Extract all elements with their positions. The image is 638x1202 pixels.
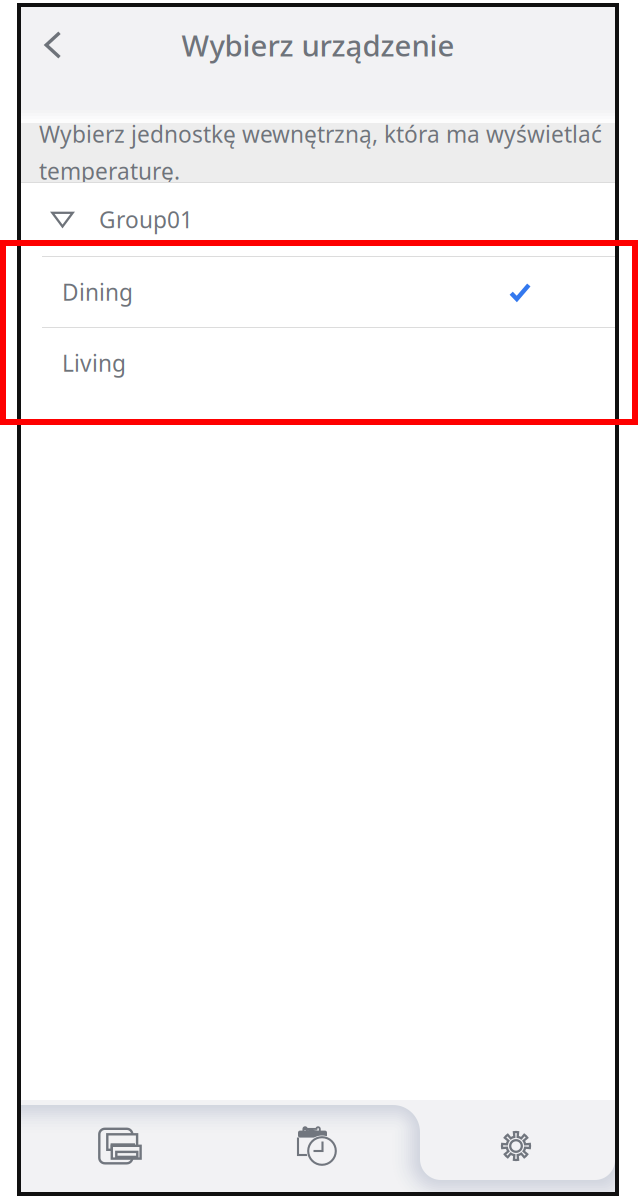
button[interactable]: Units: [21, 1100, 219, 1192]
button[interactable]: Dining: [21, 257, 615, 327]
button[interactable]: Back: [21, 7, 132, 83]
staticText: Wybierz jednostkę wewnętrzną, która ma w…: [39, 119, 602, 186]
button[interactable]: Living: [21, 328, 615, 398]
button[interactable]: Group01: [21, 183, 615, 256]
button[interactable]: Settings: [417, 1100, 615, 1192]
staticText: Group01: [99, 204, 193, 234]
staticText: Wybierz urządzenie: [181, 25, 454, 64]
staticText: Dining: [62, 277, 133, 307]
staticText: Living: [62, 348, 126, 378]
button[interactable]: Schedule: [219, 1100, 417, 1192]
